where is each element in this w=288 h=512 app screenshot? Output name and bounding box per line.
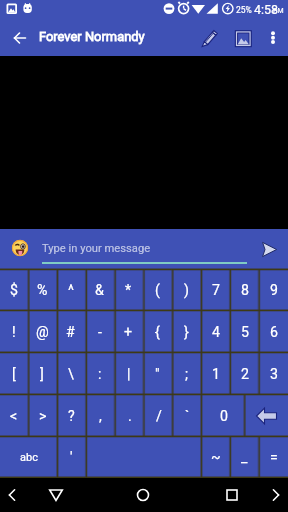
- button[interactable]: ?: [57, 395, 86, 437]
- button[interactable]: More options: [261, 20, 285, 56]
- button[interactable]: $: [0, 269, 28, 311]
- button[interactable]: 5: [230, 311, 259, 353]
- button[interactable]: (: [143, 269, 172, 311]
- staticText: |: [127, 366, 131, 383]
- staticText: ,: [99, 408, 102, 425]
- button[interactable]: ,: [86, 395, 115, 437]
- staticText: 6: [270, 324, 278, 341]
- staticText: ': [70, 449, 73, 466]
- staticText: PM: [273, 7, 284, 15]
- staticText: <: [10, 408, 18, 425]
- staticText: ]: [40, 366, 44, 383]
- button[interactable]: ;: [172, 353, 201, 395]
- button[interactable]: :: [85, 353, 114, 395]
- button[interactable]: 7: [201, 269, 230, 311]
- button[interactable]: +: [114, 311, 143, 353]
- button[interactable]: !: [0, 311, 28, 353]
- staticText: \: [68, 366, 74, 383]
- button[interactable]: <: [0, 395, 28, 437]
- button[interactable]: #: [56, 311, 85, 353]
- button[interactable]: ]: [28, 353, 56, 395]
- button[interactable]: {: [143, 311, 172, 353]
- staticText: .: [128, 408, 132, 425]
- button[interactable]: 6: [259, 311, 288, 353]
- staticText: 5: [241, 324, 249, 341]
- staticText: (: [155, 282, 160, 299]
- staticText: 9: [270, 282, 278, 299]
- button[interactable]: *: [114, 269, 143, 311]
- staticText: #: [66, 324, 75, 341]
- button[interactable]: Backspace: [245, 395, 288, 437]
- staticText: $: [10, 282, 18, 299]
- staticText: {: [155, 324, 160, 341]
- button[interactable]: [: [0, 353, 28, 395]
- staticText: 2: [241, 366, 249, 383]
- button[interactable]: Recents: [215, 478, 249, 512]
- staticText: ": [155, 366, 160, 383]
- button[interactable]: 4: [201, 311, 230, 353]
- staticText: 1: [212, 366, 220, 383]
- button[interactable]: \: [56, 353, 85, 395]
- button[interactable]: |: [114, 353, 143, 395]
- staticText: @: [36, 324, 49, 341]
- button[interactable]: _: [230, 437, 259, 478]
- button[interactable]: ~: [201, 437, 230, 478]
- staticText: &: [95, 282, 104, 299]
- button[interactable]: Hide keyboard: [39, 478, 73, 512]
- button[interactable]: Forward: [259, 478, 288, 512]
- staticText: _: [241, 449, 248, 466]
- staticText: +: [124, 324, 133, 341]
- button[interactable]: ": [143, 353, 172, 395]
- button[interactable]: .: [115, 395, 144, 437]
- button[interactable]: Space: [86, 437, 201, 478]
- button[interactable]: 8: [230, 269, 259, 311]
- staticText: 0: [220, 408, 228, 425]
- button[interactable]: 2: [230, 353, 259, 395]
- button[interactable]: ': [57, 437, 86, 478]
- button[interactable]: 3: [259, 353, 288, 395]
- button[interactable]: 0: [202, 395, 245, 437]
- button[interactable]: &: [85, 269, 114, 311]
- button[interactable]: Home: [126, 478, 160, 512]
- button[interactable]: }: [172, 311, 201, 353]
- staticText: [: [12, 366, 16, 383]
- button[interactable]: Send: [256, 229, 282, 269]
- staticText: 3: [270, 366, 278, 383]
- button[interactable]: Gallery: [229, 20, 257, 56]
- staticText: 4:58: [254, 2, 279, 17]
- button[interactable]: Edit: [195, 20, 223, 56]
- button[interactable]: Back: [2, 20, 38, 56]
- staticText: >: [39, 408, 47, 425]
- staticText: ;: [185, 366, 188, 383]
- staticText: ): [184, 282, 189, 299]
- button[interactable]: `: [173, 395, 202, 437]
- staticText: 25%: [236, 5, 252, 15]
- button[interactable]: /: [144, 395, 173, 437]
- staticText: ?: [68, 408, 75, 425]
- staticText: ~: [211, 449, 221, 466]
- button[interactable]: >: [28, 395, 57, 437]
- staticText: -: [98, 324, 102, 341]
- button[interactable]: ): [172, 269, 201, 311]
- staticText: %: [37, 282, 48, 299]
- staticText: ^: [68, 282, 74, 299]
- staticText: `: [185, 408, 190, 425]
- button[interactable]: 1: [201, 353, 230, 395]
- button[interactable]: Back: [0, 478, 29, 512]
- staticText: 7: [212, 282, 220, 299]
- staticText: *: [125, 282, 132, 299]
- button[interactable]: ^: [56, 269, 85, 311]
- button[interactable]: =: [259, 437, 288, 478]
- button[interactable]: %: [28, 269, 56, 311]
- staticText: }: [184, 324, 189, 341]
- staticText: !: [12, 324, 16, 341]
- button[interactable]: abc: [0, 437, 57, 478]
- staticText: /: [156, 408, 162, 425]
- staticText: Type in your message: [42, 242, 151, 255]
- staticText: 8: [241, 282, 249, 299]
- button[interactable]: Emoji: [7, 229, 32, 269]
- button[interactable]: 9: [259, 269, 288, 311]
- staticText: 4: [212, 324, 220, 341]
- button[interactable]: -: [85, 311, 114, 353]
- button[interactable]: @: [28, 311, 56, 353]
